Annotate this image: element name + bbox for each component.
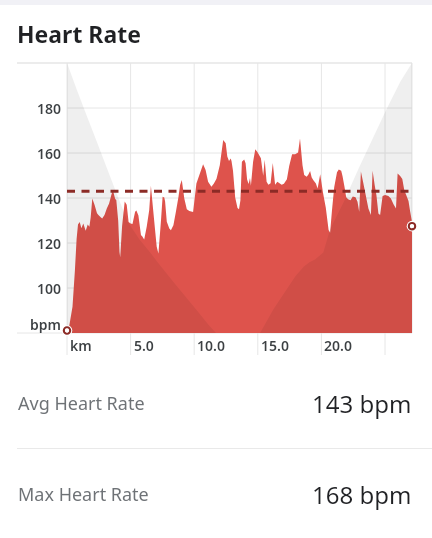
staticText: Heart Rate (17, 18, 141, 49)
other: Heart rate chart (0, 0, 432, 538)
staticText: bpm (1, 315, 61, 334)
staticText: 143 bpm (312, 387, 412, 420)
staticText: 120 (1, 234, 61, 253)
staticText: 180 (1, 99, 61, 118)
staticText: 20.0 (324, 336, 352, 355)
staticText: 100 (1, 279, 61, 298)
staticText: 10.0 (197, 336, 225, 355)
staticText: 15.0 (261, 336, 289, 355)
staticText: 5.0 (134, 336, 154, 355)
staticText: Avg Heart Rate (18, 391, 145, 416)
staticText: 168 bpm (312, 478, 412, 511)
staticText: 140 (1, 189, 61, 208)
staticText: km (70, 336, 92, 355)
button[interactable]: Avg Heart Rate (0, 358, 432, 448)
staticText: 160 (1, 144, 61, 163)
button[interactable]: Max Heart Rate (0, 449, 432, 538)
staticText: Max Heart Rate (18, 482, 149, 507)
